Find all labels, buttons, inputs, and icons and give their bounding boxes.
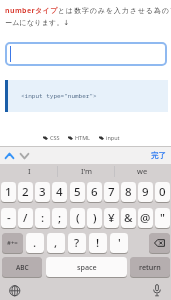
button[interactable]: return — [130, 257, 170, 277]
button[interactable]: space — [46, 257, 127, 277]
button[interactable]: . — [26, 233, 44, 253]
button[interactable]: - — [1, 208, 16, 228]
button[interactable]: 0 — [155, 182, 170, 202]
staticText: & — [124, 210, 133, 226]
button[interactable]: " — [155, 208, 170, 228]
button[interactable]: 6 — [87, 182, 102, 202]
button[interactable]: 3 — [35, 182, 50, 202]
button[interactable]: ( — [70, 208, 85, 228]
staticText: 6 — [91, 184, 98, 200]
staticText: 1 — [5, 184, 12, 200]
staticText: CSS — [50, 134, 60, 141]
button[interactable]: ! — [89, 233, 107, 253]
button[interactable]: 完了 — [151, 151, 166, 160]
button[interactable]: 4 — [52, 182, 67, 202]
button[interactable] — [20, 152, 29, 160]
button[interactable] — [5, 42, 167, 66]
staticText: 3 — [39, 184, 46, 200]
button[interactable] — [152, 284, 162, 297]
button[interactable]: #+= — [2, 233, 23, 253]
button[interactable]: I — [28, 166, 31, 176]
button[interactable]: ' — [110, 233, 128, 253]
staticText: ' — [118, 235, 121, 251]
button[interactable]: 8 — [121, 182, 136, 202]
staticText: . — [33, 235, 37, 251]
button[interactable]: HTML — [68, 134, 91, 141]
staticText: ? — [74, 235, 80, 251]
staticText: ! — [96, 235, 100, 251]
staticText: 4 — [56, 184, 63, 200]
staticText: #+= — [7, 239, 18, 247]
staticText: input — [106, 134, 120, 141]
staticText: ( — [76, 210, 80, 226]
staticText: return — [139, 262, 161, 272]
staticText: 8 — [125, 184, 132, 200]
staticText: 7 — [108, 184, 115, 200]
staticText: , — [54, 235, 58, 251]
button[interactable]: @ — [138, 208, 153, 228]
staticText: " — [160, 210, 165, 226]
staticText: - — [7, 210, 11, 226]
staticText: : — [41, 210, 45, 226]
staticText: 0 — [159, 184, 166, 200]
button[interactable]: ; — [52, 208, 67, 228]
button[interactable] — [9, 285, 21, 297]
button[interactable]: input — [99, 134, 120, 141]
staticText: space — [77, 262, 97, 272]
staticText: 5 — [74, 184, 81, 200]
button[interactable]: ) — [87, 208, 102, 228]
button[interactable]: 9 — [138, 182, 153, 202]
staticText: ームになります。↓ — [5, 18, 70, 27]
staticText: ABC — [16, 263, 29, 272]
staticText: / — [23, 210, 28, 226]
button[interactable]: ? — [68, 233, 86, 253]
button[interactable]: : — [35, 208, 50, 228]
button[interactable]: 7 — [104, 182, 119, 202]
button[interactable]: 5 — [70, 182, 85, 202]
staticText: ¥ — [108, 210, 115, 226]
button[interactable]: I'm — [81, 166, 93, 176]
button[interactable]: we — [137, 166, 148, 176]
staticText: <input type="number"> — [21, 92, 97, 100]
button[interactable]: ¥ — [104, 208, 119, 228]
button[interactable]: 2 — [18, 182, 33, 202]
staticText: 2 — [22, 184, 29, 200]
button[interactable]: , — [47, 233, 65, 253]
staticText: @ — [140, 210, 151, 226]
staticText: 9 — [142, 184, 149, 200]
staticText: ; — [58, 210, 62, 226]
staticText: numberタイプとは数字のみを入力させる為のフォ — [5, 6, 171, 16]
staticText: HTML — [75, 134, 91, 141]
button[interactable]: CSS — [43, 134, 60, 141]
button[interactable]: / — [18, 208, 33, 228]
button[interactable]: & — [121, 208, 136, 228]
button[interactable] — [149, 233, 170, 253]
button[interactable] — [5, 152, 14, 160]
staticText: ) — [93, 210, 97, 226]
button[interactable]: ABC — [2, 257, 42, 277]
button[interactable]: 1 — [1, 182, 16, 202]
